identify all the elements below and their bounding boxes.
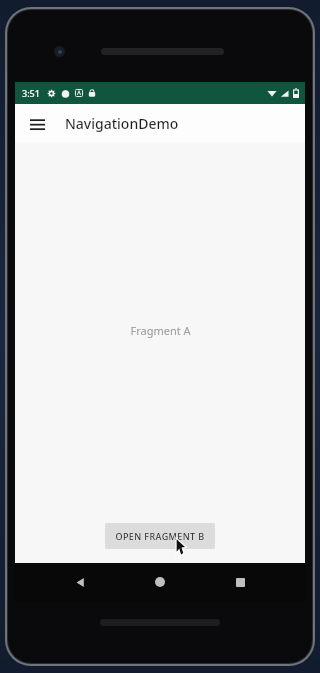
staticText: OPEN FRAGMENT B [115, 530, 205, 542]
button[interactable]: Home [147, 569, 173, 595]
button[interactable]: Back [67, 569, 93, 595]
button[interactable]: Recent apps [227, 569, 253, 595]
staticText: 3:51 [22, 87, 40, 99]
button[interactable]: Open navigation drawer [23, 109, 51, 137]
button[interactable]: OPEN FRAGMENT B [105, 523, 215, 549]
staticText: Fragment A [130, 323, 191, 338]
staticText: NavigationDemo [65, 114, 179, 133]
